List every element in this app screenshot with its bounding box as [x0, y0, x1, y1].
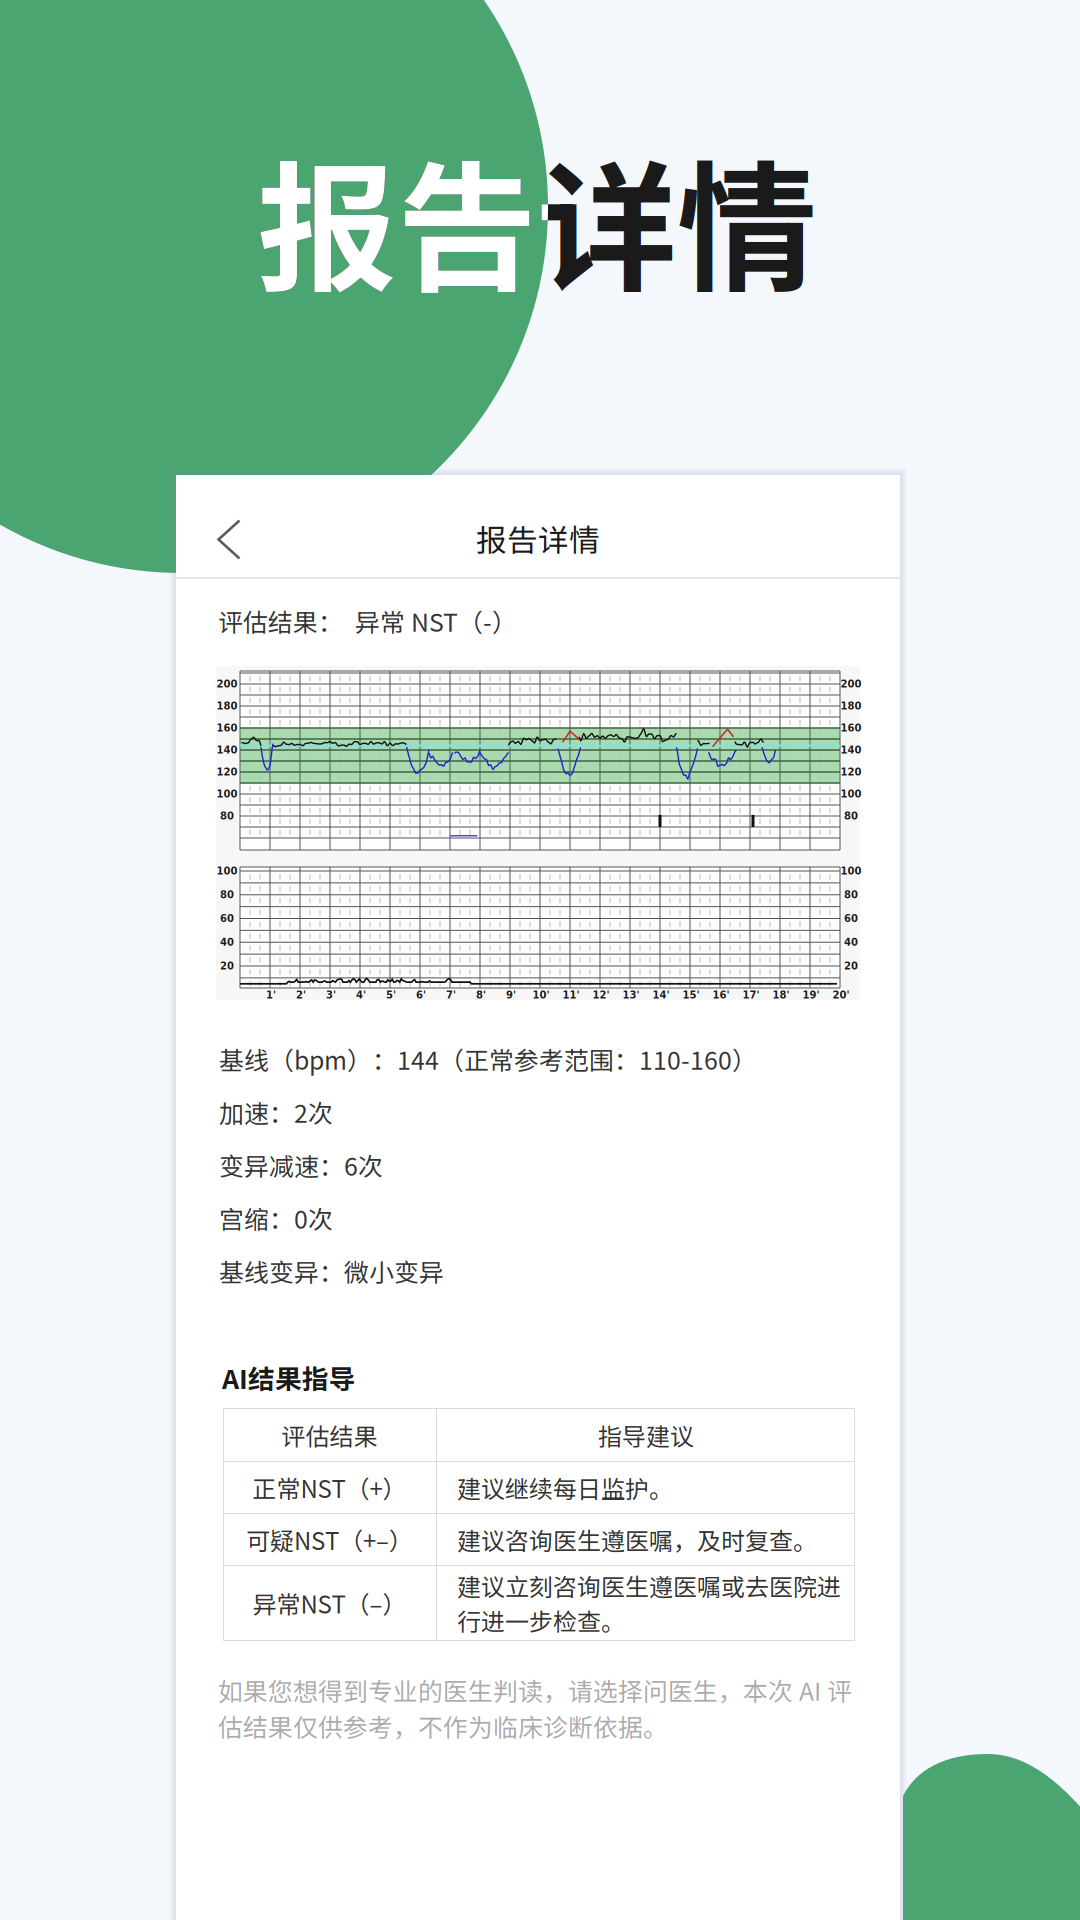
staticText: 变异减速：6次 [219, 1147, 383, 1183]
staticText: 3' [326, 989, 336, 1001]
staticText: 基线（bpm）：144（正常参考范围：110-160） [219, 1041, 757, 1077]
staticText: 160 [840, 722, 861, 734]
staticText: 20 [844, 960, 858, 972]
staticText: 140 [840, 744, 861, 756]
staticText: 18' [772, 989, 789, 1001]
staticText: 建议继续每日监护。 [457, 1470, 673, 1505]
staticText: 200 [840, 678, 861, 690]
staticText: 13' [622, 989, 639, 1001]
staticText: 5' [386, 989, 396, 1001]
staticText: 9' [506, 989, 516, 1001]
staticText: 40 [844, 936, 858, 948]
staticText: 4' [356, 989, 366, 1001]
staticText: 11' [562, 989, 579, 1001]
staticText: 2' [296, 989, 306, 1001]
staticText: 180 [216, 700, 237, 712]
staticText: 16' [712, 989, 729, 1001]
staticText: 200 [216, 678, 237, 690]
staticText: 8' [476, 989, 486, 1001]
staticText: 100 [216, 788, 237, 800]
staticText: 19' [802, 989, 819, 1001]
staticText: 宫缩：0次 [219, 1200, 333, 1236]
staticText: 100 [216, 865, 237, 877]
staticText: 17' [742, 989, 759, 1001]
staticText: 60 [844, 913, 858, 924]
staticText: 80 [220, 889, 234, 900]
staticText: 120 [216, 766, 237, 778]
staticText: 6' [416, 989, 426, 1001]
staticText: 如果您想得到专业的医生判读，请选择问医生，本次 AI 评 估结果仅供参考，不作为… [218, 1672, 852, 1744]
staticText: 15' [682, 989, 699, 1001]
staticText: 建议立刻咨询医生遵医嘱或去医院进 行进一步检查。 [457, 1568, 841, 1638]
staticText: 20' [832, 989, 849, 1001]
staticText: 1' [266, 989, 276, 1001]
staticText: 12' [592, 989, 609, 1001]
staticText: 评估结果： 异常 NST（-） [218, 603, 517, 639]
staticText: 可疑NST（+–） [246, 1522, 413, 1557]
staticText: 140 [216, 744, 237, 756]
staticText: 80 [844, 889, 858, 900]
button[interactable]: Back [176, 475, 266, 578]
staticText: AI结果指导 [222, 1358, 356, 1397]
staticText: 80 [220, 810, 234, 822]
staticText: 评估结果 [281, 1418, 377, 1452]
staticText: 7' [446, 989, 456, 1001]
staticText: 报告详情 [257, 118, 817, 320]
staticText: 异常NST（–） [252, 1586, 406, 1620]
staticText: 指导建议 [598, 1418, 694, 1452]
staticText: 180 [840, 700, 861, 712]
staticText: 100 [840, 788, 861, 800]
staticText: 建议咨询医生遵医嘱，及时复查。 [457, 1522, 817, 1557]
staticText: 报告详情 [257, 118, 817, 320]
staticText: 80 [844, 810, 858, 822]
staticText: 14' [652, 989, 669, 1001]
staticText: 60 [220, 913, 234, 924]
staticText: 报告详情 [476, 516, 600, 561]
staticText: 加速：2次 [219, 1094, 333, 1130]
staticText: 正常NST（+） [252, 1470, 406, 1505]
staticText: 120 [840, 766, 861, 778]
staticText: 100 [840, 865, 861, 877]
staticText: 基线变异：微小变异 [219, 1253, 444, 1289]
staticText: 10' [532, 989, 549, 1001]
staticText: 160 [216, 722, 237, 734]
staticText: 40 [220, 936, 234, 948]
staticText: 20 [220, 960, 234, 972]
